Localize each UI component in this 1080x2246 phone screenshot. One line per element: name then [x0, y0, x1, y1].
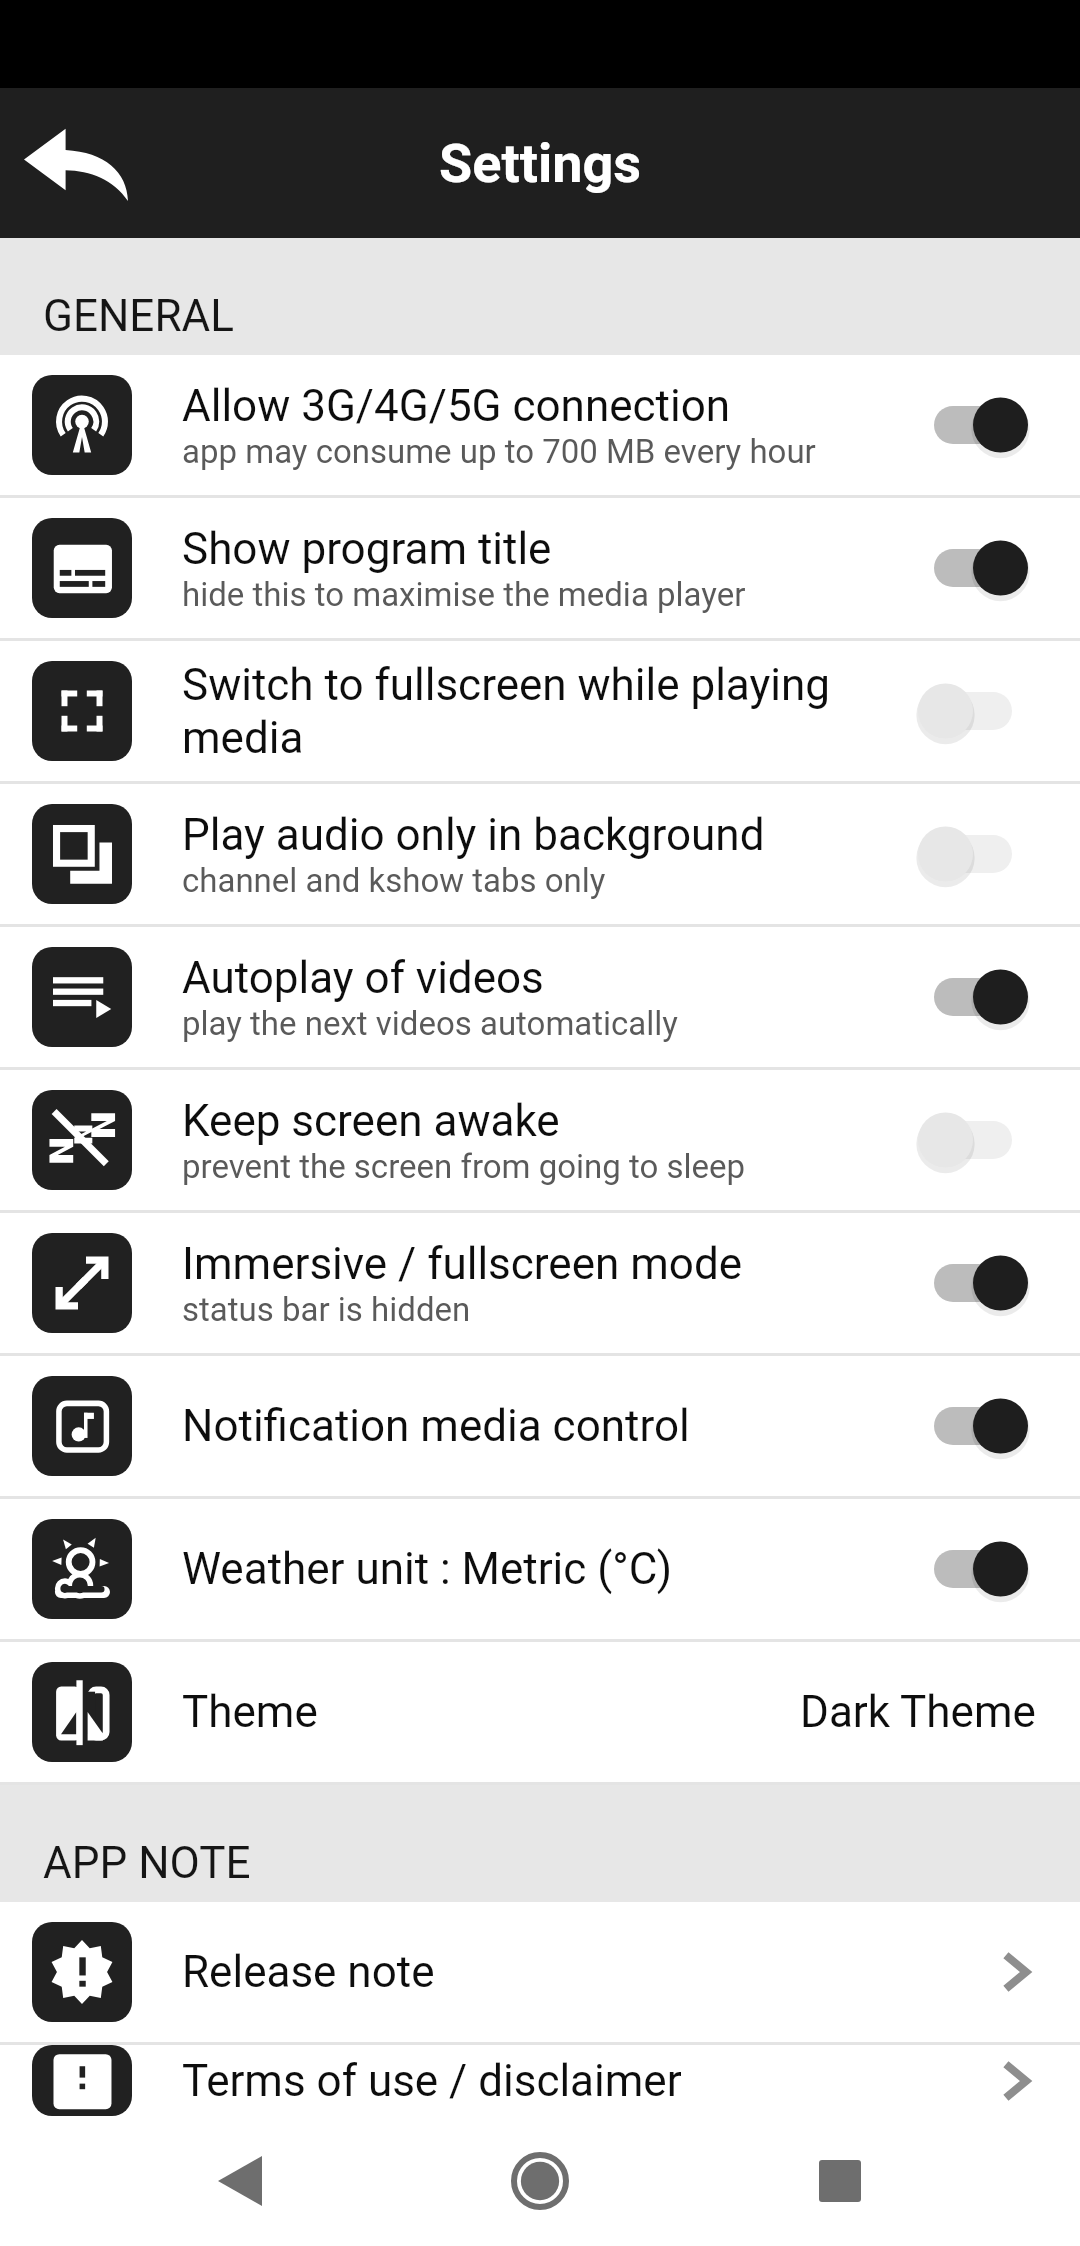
button[interactable]: Autoplay of videos [0, 927, 1080, 1067]
staticText: Show program title [182, 523, 552, 575]
staticText: prevent the screen from going to sleep [182, 1147, 746, 1186]
button[interactable]: Theme [0, 1642, 1080, 1782]
staticText: GENERAL [43, 290, 234, 342]
button[interactable]: Keep screen awake [0, 1070, 1080, 1210]
staticText: Theme [182, 1686, 318, 1738]
staticText: Terms of use / disclaimer [182, 2055, 682, 2107]
staticText: Switch to fullscreen while playing media [182, 659, 906, 764]
button[interactable]: Back [16, 103, 136, 223]
button[interactable]: Recents [780, 2121, 900, 2241]
staticText: hide this to maximise the media player [182, 575, 746, 614]
staticText: Dark Theme [800, 1686, 1036, 1738]
button[interactable]: Weather unit : Metric (°C) [0, 1499, 1080, 1639]
staticText: app may consume up to 700 MB every hour [182, 432, 816, 471]
button[interactable]: Release note [0, 1902, 1080, 2042]
staticText: Settings [439, 132, 642, 195]
button[interactable]: Notification media control [0, 1356, 1080, 1496]
button[interactable]: Switch to fullscreen while playing media [0, 641, 1080, 781]
staticText: Play audio only in background [182, 809, 765, 861]
staticText: play the next videos automatically [182, 1004, 678, 1043]
button[interactable]: Play audio only in background [0, 784, 1080, 924]
staticText: Autoplay of videos [182, 952, 544, 1004]
staticText: Immersive / fullscreen mode [182, 1238, 743, 1290]
staticText: Allow 3G/4G/5G connection [182, 380, 731, 432]
button[interactable]: Immersive / fullscreen mode [0, 1213, 1080, 1353]
button[interactable]: Back [180, 2121, 300, 2241]
staticText: Notification media control [182, 1400, 690, 1452]
staticText: Weather unit : Metric (°C) [182, 1543, 673, 1595]
staticText: Keep screen awake [182, 1095, 560, 1147]
button[interactable]: Terms of use / disclaimer [0, 2045, 1080, 2116]
button[interactable]: Allow 3G/4G/5G connection [0, 355, 1080, 495]
staticText: channel and kshow tabs only [182, 861, 606, 900]
staticText: status bar is hidden [182, 1290, 471, 1329]
staticText: Release note [182, 1946, 435, 1998]
button[interactable]: Show program title [0, 498, 1080, 638]
staticText: APP NOTE [43, 1837, 251, 1889]
button[interactable]: Home [480, 2121, 600, 2241]
